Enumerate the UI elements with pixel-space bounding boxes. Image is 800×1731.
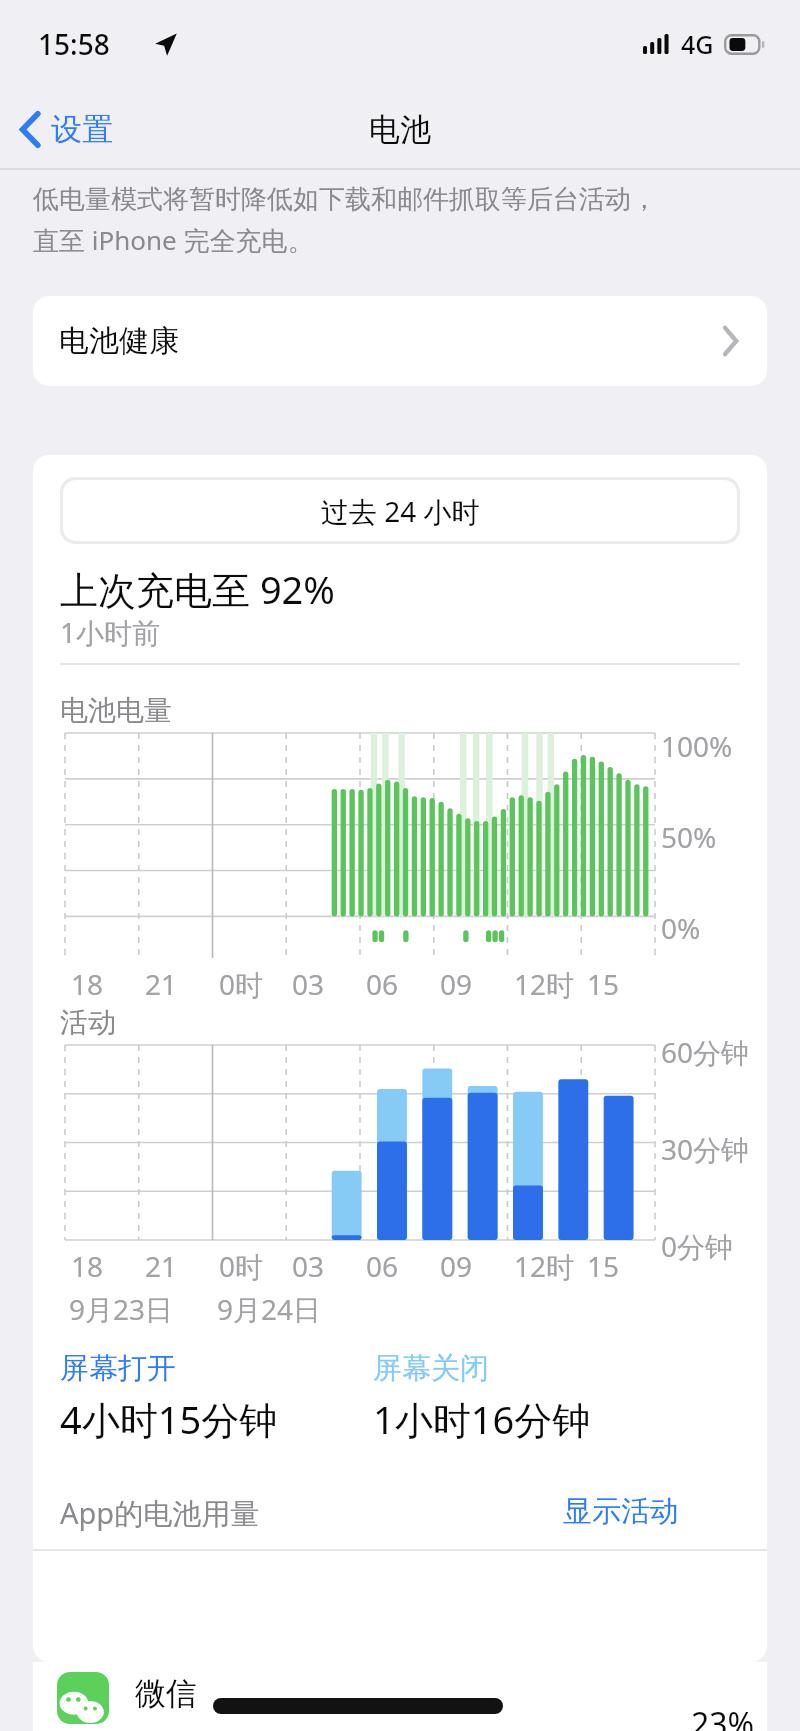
other: 返回 (20, 112, 41, 147)
staticText: App的电池用量 (60, 1493, 260, 1533)
staticText: 设置 (51, 110, 113, 149)
staticText: 1小时16分钟 (373, 1393, 591, 1445)
staticText: 显示活动 (563, 1493, 679, 1530)
staticText: 1小时前 (60, 613, 161, 651)
staticText: 电池电量 (60, 693, 172, 728)
staticText: 15 (587, 965, 620, 1003)
staticText: 4小时15分钟 (60, 1393, 278, 1445)
staticText: 0% (661, 909, 701, 947)
staticText: 60分钟 (661, 1033, 750, 1071)
staticText: 电池健康 (59, 322, 179, 360)
staticText: 9月23日 (69, 1290, 174, 1328)
staticText: 23% (691, 1702, 755, 1731)
button[interactable]: 过去 24 小时 (63, 480, 737, 541)
staticText: 15 (587, 1247, 620, 1285)
staticText: 微信 (135, 1674, 197, 1713)
button[interactable]: 显示活动 (563, 1493, 679, 1530)
staticText: 100% (661, 727, 733, 765)
staticText: 09 (440, 1247, 473, 1285)
staticText: 4G (681, 27, 714, 61)
staticText: 03 (292, 1247, 325, 1285)
staticText: 06 (366, 965, 399, 1003)
staticText: 15:58 (38, 25, 110, 63)
staticText: 9月24日 (217, 1290, 322, 1328)
staticText: 12时 (514, 965, 575, 1003)
staticText: 0时 (219, 965, 264, 1003)
button[interactable]: 微信 (33, 1662, 767, 1731)
staticText: 03 (292, 965, 325, 1003)
staticText: 18 (71, 965, 104, 1003)
button[interactable]: 电池健康 (33, 296, 767, 386)
staticText: 屏幕打开 (60, 1350, 176, 1387)
staticText: 21 (145, 965, 178, 1003)
staticText: 06 (366, 1247, 399, 1285)
staticText: 屏幕关闭 (373, 1350, 489, 1387)
staticText: 低电量模式将暂时降低如下载和邮件抓取等后台活动，直至 iPhone 完全充电。 (33, 183, 675, 258)
staticText: 18 (71, 1247, 104, 1285)
staticText: 30分钟 (661, 1130, 750, 1168)
button[interactable]: 返回 (0, 98, 129, 161)
staticText: 09 (440, 965, 473, 1003)
staticText: 过去 24 小时 (321, 492, 480, 530)
staticText: 0分钟 (661, 1227, 734, 1265)
staticText: 活动 (60, 1005, 116, 1040)
staticText: 21 (145, 1247, 178, 1285)
staticText: 0时 (219, 1247, 264, 1285)
staticText: 电池 (369, 110, 431, 149)
staticText: 上次充电至 92% (60, 563, 335, 615)
staticText: 12时 (514, 1247, 575, 1285)
staticText: 50% (661, 818, 717, 856)
